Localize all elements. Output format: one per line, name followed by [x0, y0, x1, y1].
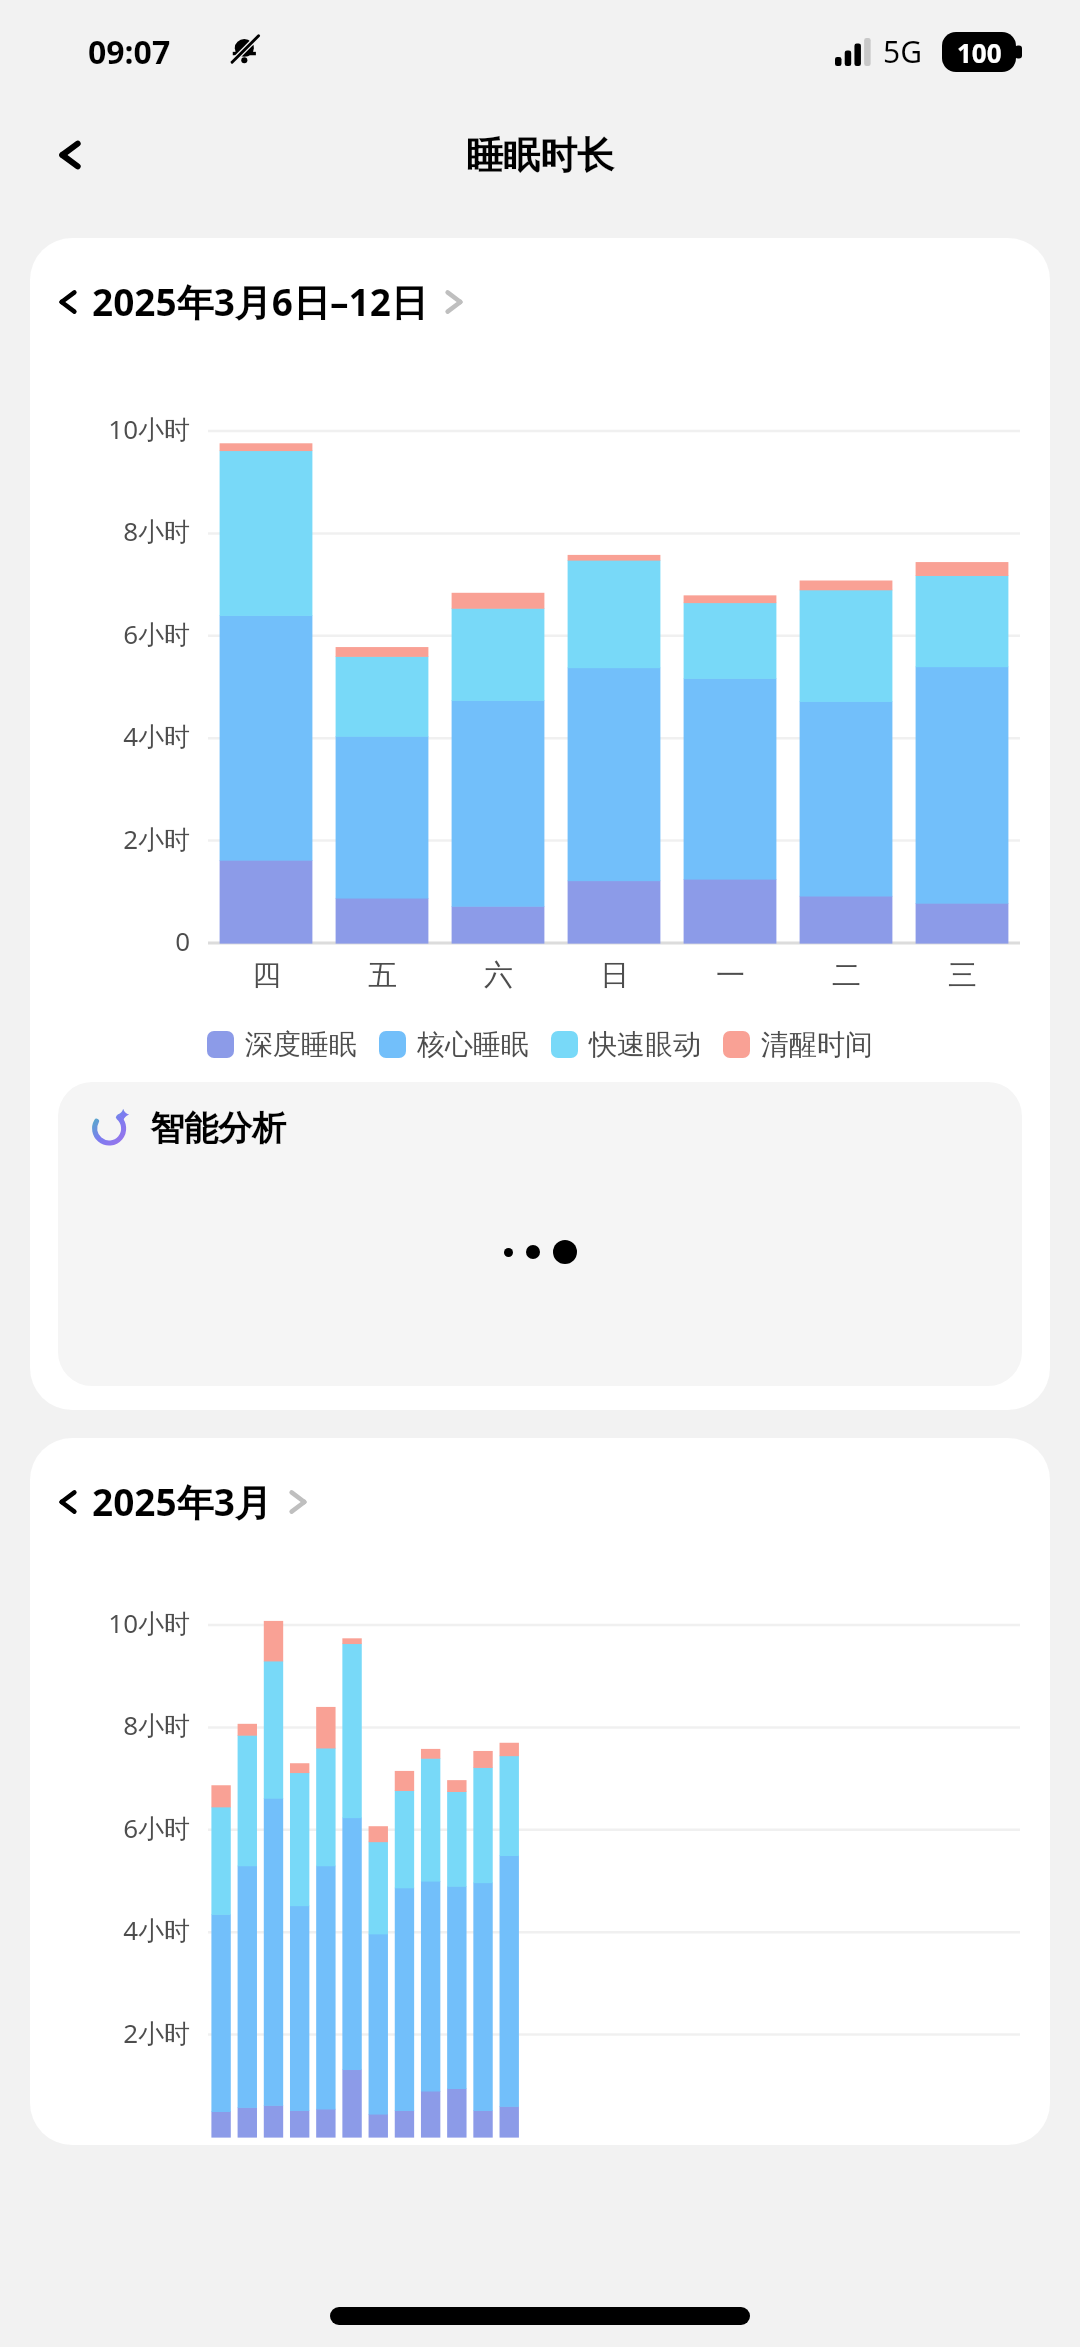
button[interactable]: 清醒时间 [723, 1027, 873, 1062]
staticText: 四 [252, 957, 281, 994]
staticText: 三 [948, 957, 977, 994]
button[interactable]: Back [34, 119, 106, 191]
staticText: 快速眼动 [589, 1027, 701, 1062]
staticText: 10小时 [108, 411, 190, 447]
staticText: 5G [883, 31, 922, 72]
button[interactable]: 核心睡眠 [379, 1027, 529, 1062]
button[interactable]: 2025年3月6日–12日 [58, 276, 464, 327]
staticText: 8小时 [123, 513, 190, 549]
button[interactable]: 智能分析 [58, 1082, 1022, 1386]
staticText: 一 [716, 957, 745, 994]
staticText: 睡眠时长 [466, 132, 614, 179]
staticText: 2小时 [123, 821, 190, 857]
staticText: 09:07 [88, 30, 171, 74]
staticText: 五 [368, 957, 397, 994]
button[interactable]: 深度睡眠 [207, 1027, 357, 1062]
staticText: 日 [600, 957, 629, 994]
button[interactable]: 快速眼动 [551, 1027, 701, 1062]
staticText: 0 [175, 923, 190, 958]
staticText: 6小时 [123, 616, 190, 652]
staticText: 深度睡眠 [245, 1027, 357, 1062]
staticText: 2025年3月6日–12日 [92, 276, 428, 327]
staticText: 2小时 [123, 2015, 190, 2051]
staticText: 2025年3月 [92, 1476, 272, 1527]
button[interactable]: 2025年3月 [58, 1476, 308, 1527]
staticText: 8小时 [123, 1707, 190, 1743]
staticText: 100 [957, 35, 1002, 70]
staticText: 清醒时间 [761, 1027, 873, 1062]
staticText: 六 [484, 957, 513, 994]
staticText: 核心睡眠 [417, 1027, 529, 1062]
staticText: 4小时 [123, 1912, 190, 1948]
staticText: 4小时 [123, 718, 190, 754]
staticText: 10小时 [108, 1605, 190, 1641]
staticText: 智能分析 [150, 1107, 286, 1150]
staticText: 6小时 [123, 1810, 190, 1846]
staticText: 二 [832, 957, 861, 994]
